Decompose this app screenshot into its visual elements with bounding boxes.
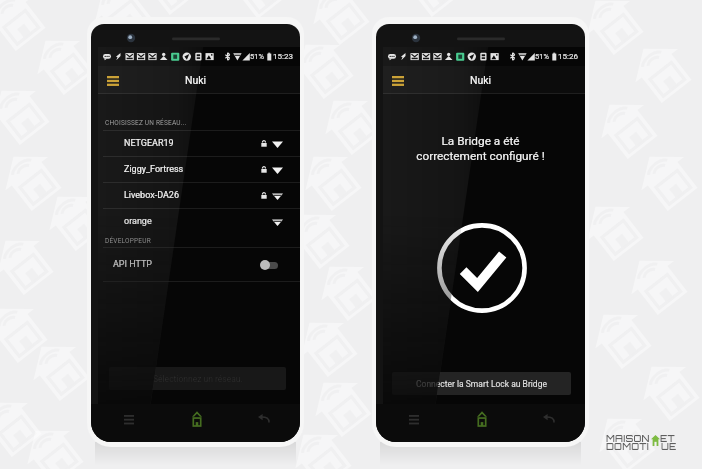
staticText: DOMOTI [606,440,649,452]
staticText: orange [124,216,152,227]
staticText: MAISON [606,432,650,444]
button[interactable]: Connecter la Smart Lock au Bridge [392,372,571,395]
button[interactable]: Recent apps [95,404,163,433]
button[interactable]: NETGEAR19 [98,131,300,156]
button[interactable]: Open navigation drawer [389,71,407,89]
button[interactable]: orange [98,209,300,234]
staticText: 15:23 [273,52,293,61]
staticText: Connecter la Smart Lock au Bridge [416,379,547,389]
button[interactable]: Sélectionnez un réseau. [109,367,286,390]
button[interactable]: Livebox-DA26 [98,183,300,208]
staticText: La Bridge a été correctement configuré ! [383,134,578,163]
button[interactable]: Ziggy_Fortress [98,157,300,182]
button[interactable]: Back [515,404,582,433]
staticText: 51% [535,52,549,61]
staticText: Nuki [470,74,492,86]
staticText: NETGEAR19 [124,138,174,149]
staticText: Ziggy_Fortress [124,164,184,175]
staticText: Sélectionnez un réseau. [153,374,243,384]
button[interactable]: Recent apps [380,404,448,433]
staticText: UE [661,440,677,452]
staticText: API HTTP [113,259,153,270]
staticText: Nuki [185,74,207,86]
button[interactable]: Back [230,404,297,433]
button[interactable]: API HTTP [98,248,300,281]
button[interactable]: Home [448,404,515,433]
staticText: CHOISISSEZ UN RÉSEAU... [105,119,187,127]
staticText: 51% [250,52,264,61]
staticText: ET [660,432,675,444]
staticText: DÉVELOPPEUR [105,237,151,245]
button[interactable]: Open navigation drawer [104,71,122,89]
staticText: Livebox-DA26 [124,190,179,201]
button[interactable]: Home [163,404,230,433]
staticText: 15:26 [558,52,578,61]
